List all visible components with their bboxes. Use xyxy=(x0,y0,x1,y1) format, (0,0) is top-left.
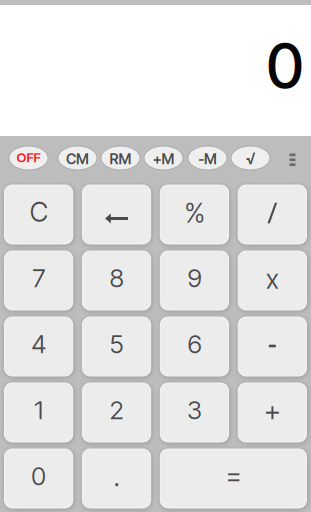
staticText: 2 xyxy=(109,395,123,425)
button[interactable]: CM xyxy=(58,146,97,170)
button[interactable] xyxy=(238,317,306,376)
button[interactable]: 5 xyxy=(82,317,151,376)
staticText: OFF xyxy=(16,149,40,165)
button[interactable]: +M xyxy=(144,146,183,170)
staticText: 5 xyxy=(109,329,123,359)
button[interactable]: = xyxy=(160,449,306,508)
staticText: 3 xyxy=(187,395,202,425)
staticText: x xyxy=(266,263,279,295)
button[interactable]: 0 xyxy=(4,449,73,508)
button[interactable] xyxy=(238,185,306,244)
staticText: + xyxy=(264,394,281,427)
button[interactable]: √ xyxy=(231,146,270,170)
staticText: . xyxy=(113,460,119,493)
button[interactable]: RM xyxy=(101,146,140,170)
staticText: RM xyxy=(109,150,131,168)
staticText: √ xyxy=(245,149,255,168)
button[interactable]: 2 xyxy=(82,383,151,442)
staticText: 1 xyxy=(34,395,43,425)
staticText: % xyxy=(184,197,204,229)
staticText: 8 xyxy=(109,263,123,293)
staticText: 6 xyxy=(187,329,201,359)
button[interactable]: C xyxy=(4,185,73,244)
button[interactable]: . xyxy=(82,449,151,508)
button[interactable]: 3 xyxy=(160,383,229,442)
button[interactable]: % xyxy=(160,185,229,244)
button[interactable]: + xyxy=(238,383,306,442)
button[interactable]: OFF xyxy=(9,146,48,170)
staticText: 0 xyxy=(31,461,46,491)
staticText: C xyxy=(30,196,48,228)
button[interactable]: -M xyxy=(188,146,227,170)
staticText: = xyxy=(225,459,241,492)
staticText: -M xyxy=(198,150,217,168)
button[interactable]: 6 xyxy=(160,317,229,376)
button[interactable]: 9 xyxy=(160,251,229,310)
button[interactable]: Menu xyxy=(279,147,305,173)
staticText: 9 xyxy=(187,263,201,293)
staticText: CM xyxy=(66,150,89,168)
staticText: +M xyxy=(152,150,174,168)
button[interactable]: 4 xyxy=(4,317,73,376)
button[interactable]: 8 xyxy=(82,251,151,310)
button[interactable]: 7 xyxy=(4,251,73,310)
staticText: 4 xyxy=(31,329,46,359)
button[interactable]: x xyxy=(238,251,306,310)
button[interactable] xyxy=(82,185,151,244)
staticText: 7 xyxy=(32,263,45,293)
staticText: 0 xyxy=(266,29,303,103)
button[interactable]: 1 xyxy=(4,383,73,442)
